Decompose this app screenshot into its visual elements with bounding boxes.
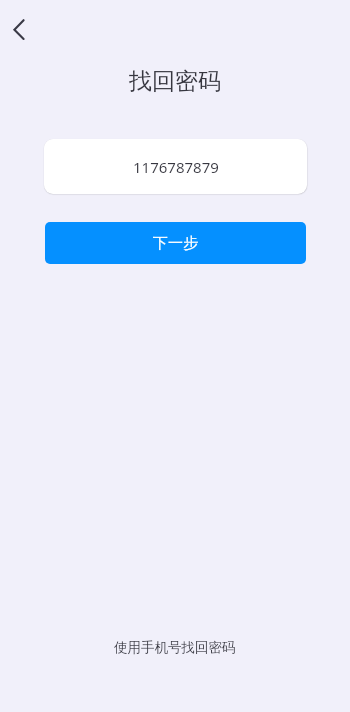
button[interactable]: Back <box>2 8 36 42</box>
button[interactable]: 下一步 <box>45 222 306 264</box>
staticText: 找回密码 <box>129 67 221 96</box>
staticText: 使用手机号找回密码 <box>114 639 236 656</box>
button[interactable]: 使用手机号找回密码 <box>102 633 248 662</box>
button[interactable]: 1176787879 <box>44 139 307 194</box>
staticText: 下一步 <box>153 234 198 253</box>
staticText: 1176787879 <box>133 157 219 177</box>
